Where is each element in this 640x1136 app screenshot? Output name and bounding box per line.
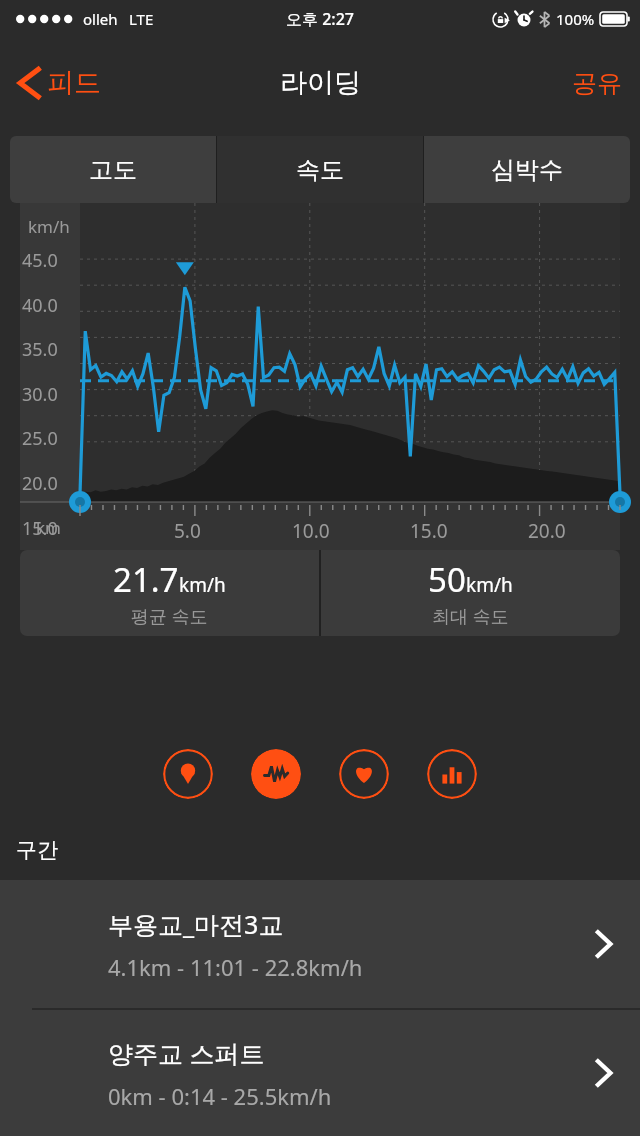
staticText: 0km - 0:14 - 25.5km/h bbox=[108, 1081, 332, 1111]
staticText: 4.1km - 11:01 - 22.8km/h bbox=[108, 952, 363, 982]
staticText: km/h bbox=[466, 572, 513, 598]
button[interactable]: 21.7 bbox=[20, 550, 319, 636]
staticText: 라이딩 bbox=[280, 66, 361, 100]
button[interactable]: Speed bbox=[251, 749, 301, 799]
staticText: km bbox=[36, 516, 61, 539]
staticText: 25.0 bbox=[22, 426, 58, 451]
staticText: olleh bbox=[83, 9, 118, 29]
staticText: 45.0 bbox=[22, 248, 58, 273]
staticText: 공유 bbox=[572, 68, 622, 99]
staticText: 35.0 bbox=[22, 337, 58, 362]
button[interactable]: Heart rate bbox=[339, 749, 389, 799]
staticText: 오후 2:27 bbox=[286, 8, 354, 30]
button[interactable]: 심박수 bbox=[424, 136, 630, 203]
staticText: 최대 속도 bbox=[432, 604, 509, 629]
staticText: 속도 bbox=[296, 155, 344, 185]
staticText: 10.0 bbox=[292, 518, 330, 544]
staticText: km/h bbox=[179, 572, 226, 598]
button[interactable]: Stats bbox=[427, 749, 477, 799]
staticText: 20.0 bbox=[528, 518, 566, 544]
staticText: 40.0 bbox=[22, 293, 58, 318]
button[interactable]: 공유 bbox=[568, 62, 626, 105]
button[interactable]: 50 bbox=[321, 550, 620, 636]
staticText: 부용교_마전3교 bbox=[108, 907, 284, 941]
staticText: 평균 속도 bbox=[131, 604, 208, 629]
staticText: 5.0 bbox=[174, 518, 201, 544]
staticText: 21.7 bbox=[113, 557, 179, 602]
staticText: 30.0 bbox=[22, 382, 58, 407]
staticText: 양주교 스퍼트 bbox=[108, 1036, 265, 1070]
staticText: 15.0 bbox=[22, 516, 58, 541]
button[interactable]: 속도 bbox=[217, 136, 423, 203]
staticText: LTE bbox=[129, 9, 154, 29]
button[interactable]: 부용교_마전3교 bbox=[0, 880, 640, 1008]
button[interactable]: 고도 bbox=[10, 136, 216, 203]
staticText: 심박수 bbox=[491, 155, 563, 185]
staticText: 15.0 bbox=[410, 518, 448, 544]
staticText: 고도 bbox=[89, 155, 137, 185]
staticText: 50 bbox=[428, 557, 466, 602]
button[interactable]: 피드 bbox=[14, 59, 105, 107]
staticText: km/h bbox=[28, 215, 70, 238]
staticText: 20.0 bbox=[22, 471, 58, 496]
button[interactable]: Map bbox=[163, 749, 213, 799]
staticText: 구간 bbox=[16, 837, 58, 863]
staticText: 피드 bbox=[47, 66, 101, 100]
button[interactable]: 양주교 스퍼트 bbox=[0, 1010, 640, 1136]
staticText: 100% bbox=[556, 9, 595, 29]
